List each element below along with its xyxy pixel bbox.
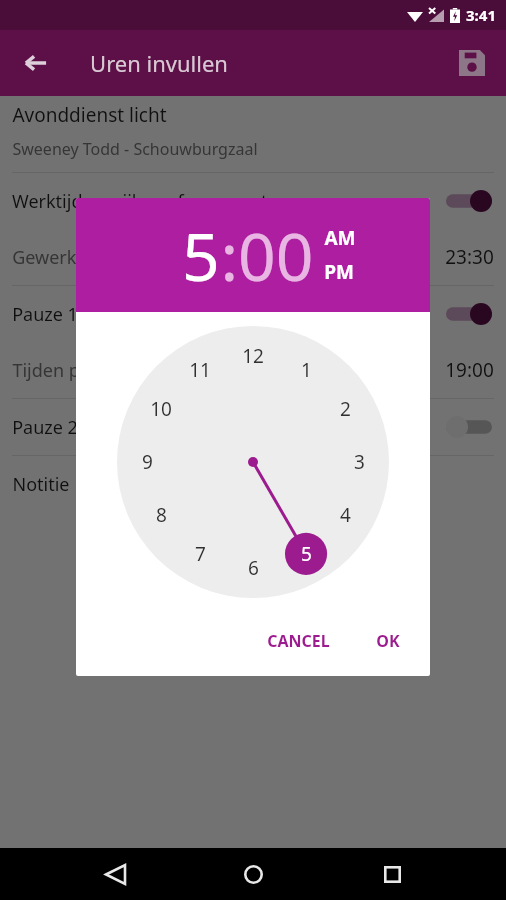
staticText: Notitie	[12, 472, 70, 497]
staticText: Tijden pauze 1	[12, 358, 135, 383]
staticText: OK	[376, 630, 400, 652]
button[interactable]: Pauze 1	[0, 286, 506, 342]
staticText: Pauze 1	[12, 302, 78, 327]
button[interactable]: PM	[324, 259, 354, 285]
button[interactable]: Werktijden wijken af van rooster	[0, 173, 506, 229]
staticText: PM	[324, 259, 354, 285]
staticText: 1	[301, 357, 312, 383]
staticText: Gewerkte tijden	[12, 245, 146, 270]
staticText: 10	[150, 396, 172, 422]
staticText: 9	[142, 449, 153, 475]
staticText: 8	[156, 502, 167, 528]
staticText: 5	[182, 210, 220, 300]
staticText: 12	[242, 343, 264, 369]
staticText: 4	[340, 502, 351, 528]
button[interactable]: OK	[366, 622, 410, 660]
staticText: :00	[220, 210, 314, 300]
staticText: Werktijden wijken af van rooster	[12, 189, 285, 214]
staticText: Pauze 2	[12, 415, 78, 440]
button[interactable]: Pauze 2	[0, 399, 506, 455]
staticText: AM	[324, 225, 356, 251]
button[interactable]: CANCEL	[257, 622, 340, 660]
button[interactable]: Notitie	[0, 456, 506, 512]
button[interactable]: Tijden pauze 1	[0, 342, 506, 398]
staticText: 3:41	[466, 5, 496, 25]
staticText: 6	[248, 555, 259, 581]
button[interactable]: Recent apps	[368, 850, 416, 898]
staticText: 7	[195, 541, 206, 567]
staticText: 19:00	[445, 357, 494, 383]
staticText: 11	[189, 357, 211, 383]
staticText: 23:30	[445, 244, 494, 270]
button[interactable]: Home	[229, 850, 277, 898]
staticText: 3	[354, 449, 365, 475]
button[interactable]: AM	[324, 225, 356, 251]
staticText: Sweeney Todd - Schouwburgzaal	[12, 138, 258, 160]
staticText: CANCEL	[267, 630, 330, 652]
button[interactable]: Back	[12, 39, 60, 87]
staticText: 5	[301, 541, 312, 567]
staticText: Uren invullen	[90, 48, 228, 78]
staticText: Avonddienst licht	[12, 102, 167, 128]
button[interactable]: Back	[91, 850, 139, 898]
button[interactable]: Save	[448, 39, 496, 87]
staticText: 2	[340, 396, 351, 422]
button[interactable]: Gewerkte tijden	[0, 229, 506, 285]
